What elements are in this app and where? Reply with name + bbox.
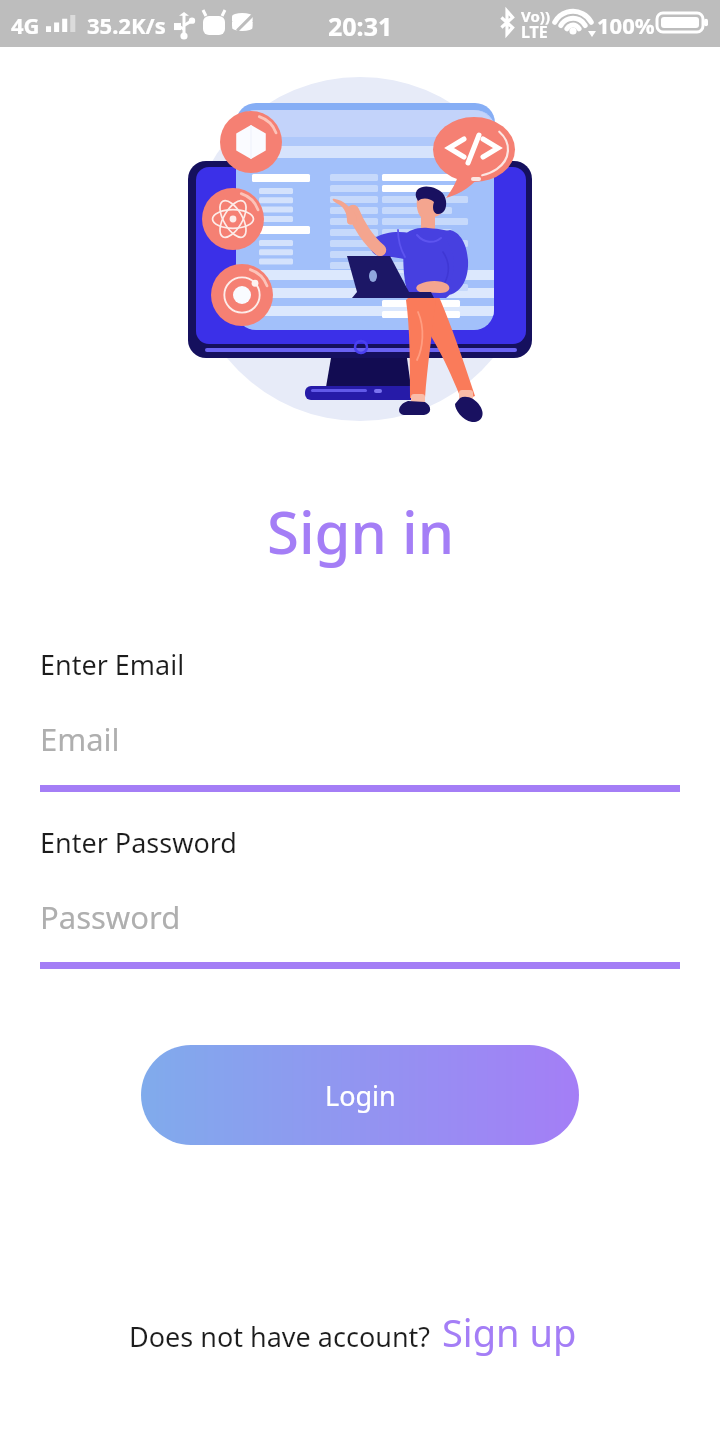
staticText: 35.2K/s: [87, 10, 166, 40]
staticText: LTE: [521, 21, 548, 43]
staticText: Sign up: [442, 1306, 577, 1358]
staticText: Does not have account?: [129, 1318, 431, 1355]
button[interactable]: Sign up: [442, 1306, 577, 1358]
staticText: Enter Password: [40, 824, 237, 861]
staticText: Login: [325, 1077, 396, 1114]
staticText: 20:31: [328, 9, 393, 43]
staticText: 100%: [597, 10, 655, 40]
staticText: Sign in: [267, 492, 454, 571]
staticText: Password: [40, 896, 181, 938]
staticText: Vo)): [521, 6, 550, 26]
button[interactable]: Login: [141, 1045, 579, 1145]
staticText: Enter Email: [40, 646, 185, 683]
staticText: 4G: [11, 10, 40, 40]
staticText: Email: [40, 718, 120, 760]
